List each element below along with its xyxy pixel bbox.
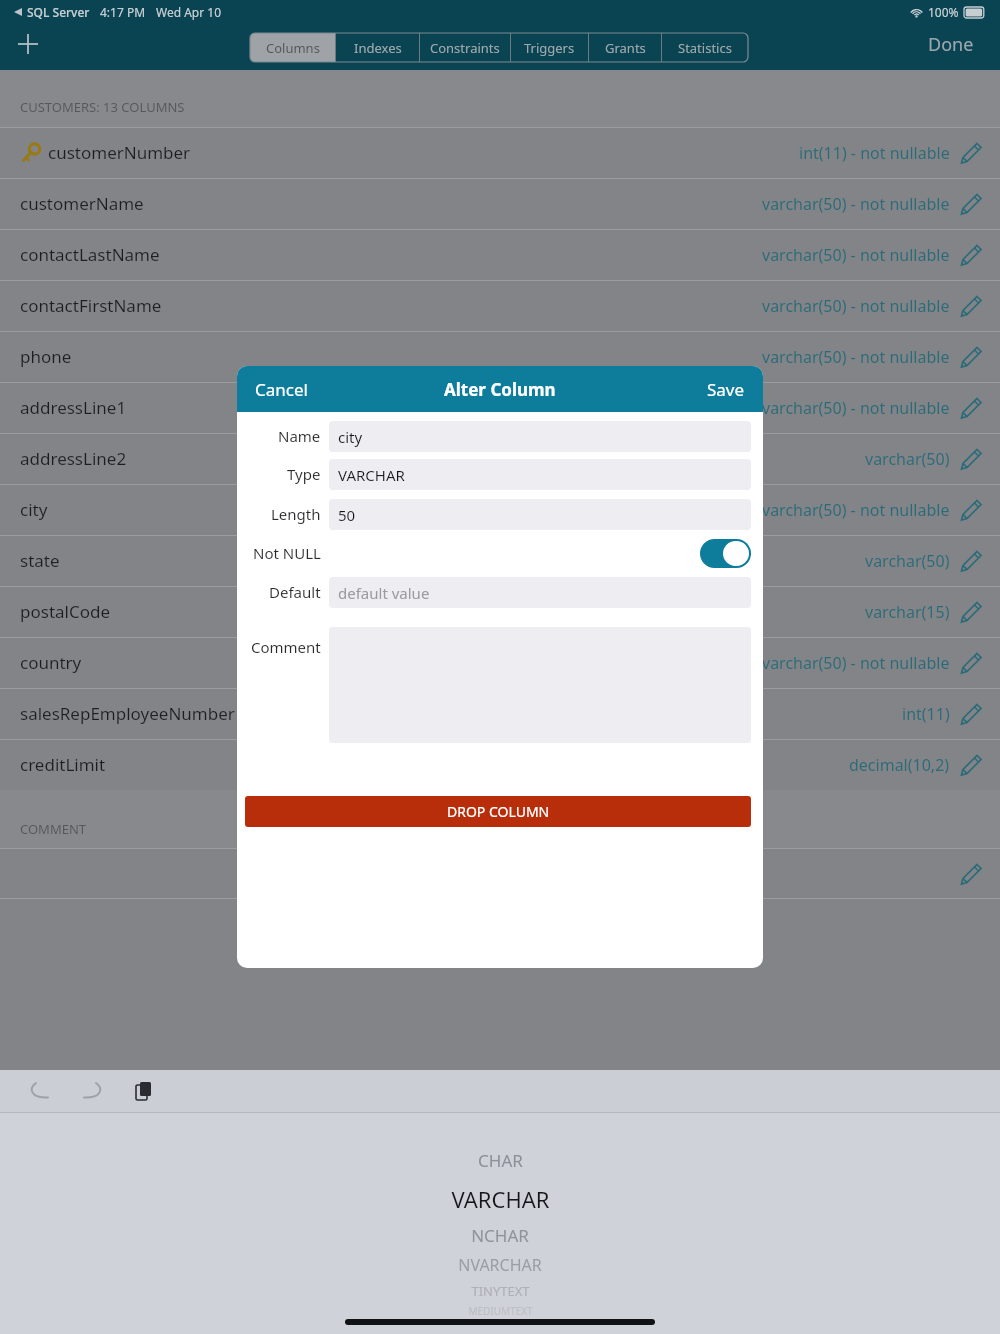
button[interactable]: customerName [0,178,1000,229]
staticText: 100% [928,4,959,20]
staticText: varchar(50) - not nullable [762,652,950,674]
staticText: Cancel [255,378,308,401]
button[interactable]: state [0,535,1000,586]
button[interactable]: contactLastName [0,229,1000,280]
staticText: state [20,549,60,572]
staticText: varchar(50) [865,448,950,470]
button[interactable]: contactFirstName [0,280,1000,331]
button[interactable]: Save [689,370,763,409]
staticText: int(11) - not nullable [799,142,950,164]
staticText: TINYTEXT [471,1282,530,1300]
staticText: Triggers [524,39,575,57]
staticText: creditLimit [20,753,106,776]
staticText: postalCode [20,600,111,623]
staticText: customerNumber [48,141,191,164]
staticText: city [338,427,363,447]
staticText: Comment [251,637,321,657]
staticText: Indexes [354,39,402,57]
staticText: country [20,651,82,674]
staticText: varchar(15) [865,601,950,623]
button[interactable]: default value [329,577,751,608]
staticText: phone [20,345,72,368]
staticText: Name [278,426,321,446]
staticText: varchar(50) - not nullable [762,346,950,368]
button[interactable]: postalCode [0,586,1000,637]
button[interactable]: city [0,484,1000,535]
button[interactable]: Indexes [336,33,419,62]
staticText: Constraints [430,39,500,57]
staticText: Save [707,378,745,401]
staticText: decimal(10,2) [849,754,950,776]
staticText: Default [269,582,321,602]
staticText: CUSTOMERS: 13 COLUMNS [20,98,185,116]
button[interactable] [0,848,1000,899]
staticText: varchar(50) - not nullable [762,397,950,419]
staticText: Not NULL [253,543,321,563]
staticText: VARCHAR [338,465,405,485]
button[interactable]: Grants [589,33,661,62]
staticText: COMMENT [20,820,87,838]
button[interactable]: Not NULL toggle [700,539,751,568]
button[interactable]: addressLine1 [0,382,1000,433]
staticText: int(11) [902,703,950,725]
staticText: 50 [338,505,356,525]
staticText: varchar(50) - not nullable [762,193,950,215]
staticText: Grants [605,39,646,57]
staticText: customerName [20,192,144,215]
button[interactable]: Paste [126,1073,162,1109]
button[interactable]: Columns [250,33,335,62]
staticText: Wed Apr 10 [156,4,222,20]
staticText: default value [338,583,430,603]
staticText: varchar(50) - not nullable [762,499,950,521]
button[interactable]: Undo [22,1073,58,1109]
button[interactable]: DROP COLUMN [245,796,751,827]
button[interactable]: Done [922,26,980,63]
button[interactable]: Add column [10,26,46,62]
staticText: Length [271,504,321,524]
staticText: Columns [266,39,320,57]
staticText: city [20,498,48,521]
staticText: VARCHAR [451,1184,550,1214]
staticText: varchar(50) - not nullable [762,244,950,266]
staticText: varchar(50) - not nullable [762,295,950,317]
button[interactable]: Statistics [662,33,748,62]
button[interactable]: 50 [329,499,751,530]
button[interactable]: addressLine2 [0,433,1000,484]
button[interactable]: customerNumber [0,127,1000,178]
staticText: salesRepEmployeeNumber [20,702,235,725]
button[interactable]: creditLimit [0,739,1000,790]
staticText: DROP COLUMN [447,802,550,821]
staticText: contactLastName [20,243,160,266]
button[interactable]: VARCHAR [329,459,751,490]
staticText: contactFirstName [20,294,162,317]
staticText: NCHAR [471,1224,529,1247]
button[interactable]: city [329,421,751,452]
staticText: SQL Server [27,4,90,20]
staticText: Type [287,464,321,484]
staticText: varchar(50) [865,550,950,572]
button[interactable]: phone [0,331,1000,382]
staticText: addressLine2 [20,447,127,470]
staticText: Done [928,32,974,57]
button[interactable]: Triggers [511,33,588,62]
staticText: CHAR [478,1149,523,1172]
button[interactable]: Redo [74,1073,110,1109]
button[interactable]: Cancel [237,370,326,409]
button[interactable]: country [0,637,1000,688]
staticText: 4:17 PM [100,4,146,20]
staticText: NVARCHAR [458,1254,542,1276]
staticText: MEDIUMTEXT [468,1304,533,1318]
button[interactable]: Constraints [420,33,510,62]
staticText: Alter Column [444,378,556,401]
button[interactable]: salesRepEmployeeNumber [0,688,1000,739]
staticText: Statistics [678,39,732,57]
staticText: addressLine1 [20,396,127,419]
